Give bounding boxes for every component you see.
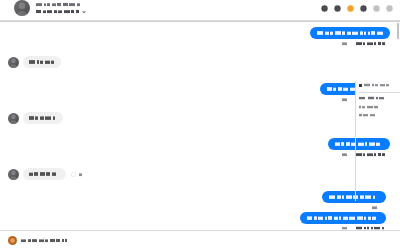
button[interactable]: Starred	[344, 2, 357, 14]
button[interactable]: Archive	[357, 2, 370, 14]
button[interactable]: Settings	[318, 2, 331, 14]
button[interactable]: Mark	[383, 2, 396, 14]
button[interactable]	[320, 83, 390, 95]
button[interactable]	[23, 56, 61, 68]
button[interactable]: More	[370, 2, 383, 14]
button[interactable]	[23, 112, 63, 124]
button[interactable]	[310, 27, 390, 39]
button[interactable]	[328, 138, 390, 150]
button[interactable]: Messenger	[8, 236, 17, 245]
button[interactable]: Delete	[331, 2, 344, 14]
button[interactable]	[356, 80, 400, 117]
button[interactable]	[300, 212, 386, 224]
button[interactable]	[23, 168, 66, 180]
button[interactable]	[322, 191, 386, 203]
other: Reaction	[71, 172, 76, 177]
